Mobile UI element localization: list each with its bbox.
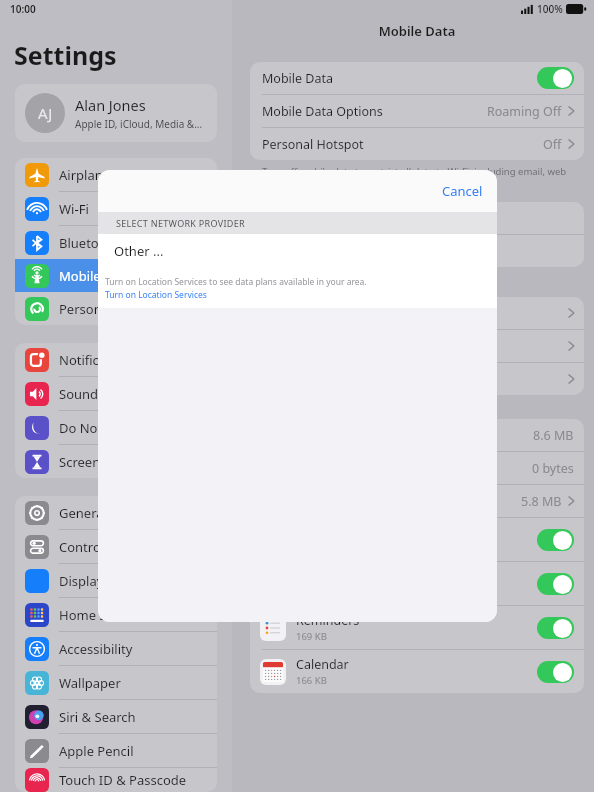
button[interactable]: Screen Time <box>15 445 217 478</box>
button[interactable]: Touch ID & Passcode <box>15 768 217 792</box>
staticText: Personal Hotspot <box>59 300 165 318</box>
button[interactable]: Calendar <box>250 650 584 693</box>
staticText: Personal Hotspot <box>262 136 364 153</box>
staticText: General <box>59 504 107 522</box>
button[interactable]: Do Not Disturb <box>15 411 217 444</box>
staticText: Airplane Mode <box>59 166 149 184</box>
staticText: Apple Pencil <box>59 742 134 760</box>
staticText: Mobile Data <box>59 267 133 285</box>
staticText: Screen Time <box>59 453 134 471</box>
button[interactable]: 0 bytes <box>250 452 584 484</box>
staticText: 5.8 MB <box>521 493 562 510</box>
staticText: Do Not Disturb <box>59 419 151 437</box>
button[interactable]: Toggle on <box>537 529 574 551</box>
button[interactable]: Reminders <box>250 606 584 649</box>
button[interactable]: Toggle on <box>537 661 574 683</box>
button[interactable] <box>250 297 584 329</box>
staticText: Bluetooth <box>59 234 120 252</box>
staticText: Turn on Location Services to see data pl… <box>105 276 367 288</box>
staticText: Accessibility <box>59 640 133 658</box>
staticText: 10:00 <box>10 2 36 16</box>
button[interactable]: Notifications <box>15 343 217 376</box>
staticText: Cancel <box>442 182 483 200</box>
button[interactable]: Display & Brightness <box>15 564 217 597</box>
staticText: Wi-Fi <box>59 200 89 218</box>
button[interactable]: Siri & Search <box>15 700 217 733</box>
button[interactable]: AJ <box>15 84 217 142</box>
staticText: Turn off mobile data to restrict all dat… <box>262 165 567 190</box>
button[interactable]: Photos <box>250 518 584 561</box>
button[interactable]: Other ... <box>98 234 497 268</box>
staticText: Reminders <box>296 612 360 629</box>
button[interactable] <box>250 330 584 362</box>
button[interactable]: Mobile Data <box>15 259 217 292</box>
button[interactable] <box>250 202 584 234</box>
button[interactable]: 5.8 MB <box>250 485 584 517</box>
staticText: Display & Brightness <box>59 572 186 590</box>
staticText: Apple ID, iCloud, Media &... <box>75 117 203 131</box>
staticText: Calendar <box>296 656 349 673</box>
button[interactable] <box>250 363 584 395</box>
staticText: AJ <box>38 103 53 123</box>
button[interactable]: Control Centre <box>15 530 217 563</box>
button[interactable]: Sounds <box>15 377 217 410</box>
button[interactable]: Toggle on <box>537 67 574 89</box>
button[interactable]: Airplane Mode <box>15 158 217 191</box>
staticText: SELECT NETWORK PROVIDER <box>116 217 245 229</box>
staticText: Mobile Data Options <box>262 103 383 120</box>
staticText: Settings <box>14 38 117 72</box>
button[interactable] <box>250 235 584 267</box>
button[interactable]: Apple Pencil <box>15 734 217 767</box>
staticText: Add a data plan to show data <box>262 272 392 285</box>
staticText: Home Screen & Dock <box>59 606 188 624</box>
button[interactable]: Wi-Fi <box>15 192 217 225</box>
button[interactable]: General <box>15 496 217 529</box>
button[interactable]: 8.6 MB <box>250 419 584 451</box>
staticText: Wallpaper <box>59 674 121 692</box>
staticText: Mobile Data <box>262 70 334 87</box>
button[interactable]: Bluetooth <box>15 226 217 259</box>
button[interactable]: Wallpaper <box>15 666 217 699</box>
button[interactable]: Cancel <box>428 174 497 208</box>
staticText: Turn on Location Services <box>105 289 207 301</box>
staticText: 169 KB <box>296 630 327 643</box>
button[interactable]: Mobile Data Options <box>250 95 584 127</box>
button[interactable]: Home Screen & Dock <box>15 598 217 631</box>
staticText: 0 bytes <box>532 460 574 477</box>
staticText: Control Centre <box>59 538 149 556</box>
staticText: 166 KB <box>296 674 327 687</box>
staticText: Siri & Search <box>59 708 136 726</box>
staticText: Other ... <box>114 242 164 260</box>
button[interactable]: Toggle on <box>537 617 574 639</box>
button[interactable]: Turn on Location Services <box>98 288 207 304</box>
staticText: Mobile Data <box>240 22 594 40</box>
staticText: Alan Jones <box>75 95 146 115</box>
staticText: Touch ID & Passcode <box>59 771 187 789</box>
staticText: Off <box>543 136 562 153</box>
staticText: Notifications <box>59 351 137 369</box>
button[interactable]: Toggle on <box>537 573 574 595</box>
button[interactable]: Settings <box>250 562 584 605</box>
staticText: 8.6 MB <box>533 427 574 444</box>
button[interactable]: Personal Hotspot <box>15 292 217 325</box>
button[interactable]: Mobile Data <box>250 62 584 94</box>
button[interactable]: Personal Hotspot <box>250 128 584 160</box>
staticText: Roaming Off <box>487 103 562 120</box>
staticText: 100% <box>537 2 563 16</box>
button[interactable]: Accessibility <box>15 632 217 665</box>
staticText: Sounds <box>59 385 105 403</box>
